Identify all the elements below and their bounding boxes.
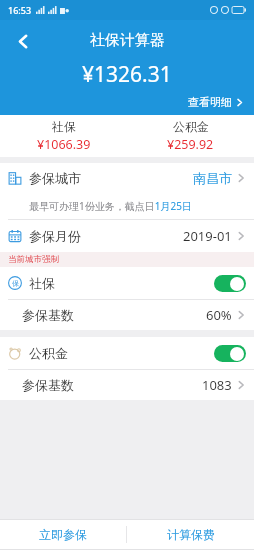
staticText: 16:53 — [8, 4, 32, 16]
staticText: 参保基数 — [22, 307, 74, 323]
staticText: 查看明细 — [188, 95, 232, 109]
staticText: 公积金 — [29, 345, 68, 361]
button[interactable]: Toggle — [214, 345, 246, 362]
button[interactable]: 保 — [0, 267, 254, 299]
staticText: 2019-01 — [183, 227, 232, 245]
button[interactable]: 查看明细 — [184, 93, 248, 111]
button[interactable]: 立即参保 — [0, 520, 126, 549]
staticText: ¥1066.39 — [37, 136, 91, 153]
staticText: 社保 — [52, 119, 76, 134]
staticText: 社保 — [29, 275, 55, 291]
staticText: 南昌市 — [193, 170, 232, 186]
staticText: 参保基数 — [22, 377, 74, 393]
button[interactable]: 参保基数 — [0, 370, 254, 400]
staticText: 社保计算器 — [90, 31, 165, 50]
staticText: ¥1326.31 — [82, 60, 172, 89]
button[interactable]: 计算保费 — [127, 520, 254, 549]
staticText: 60% — [206, 306, 232, 324]
staticText: 保 — [12, 279, 19, 288]
staticText: 当前城市强制 — [8, 254, 59, 265]
staticText: 参保月份 — [29, 228, 81, 244]
button[interactable]: Toggle — [214, 275, 246, 292]
button[interactable]: 公积金 — [0, 337, 254, 369]
staticText: 1083 — [202, 376, 232, 394]
staticText: 参保城市 — [29, 170, 81, 186]
button[interactable]: 参保城市 — [0, 163, 254, 193]
button[interactable]: 参保月份 — [0, 220, 254, 252]
staticText: 立即参保 — [39, 527, 87, 542]
staticText: 计算保费 — [167, 527, 215, 542]
staticText: ¥259.92 — [167, 136, 214, 153]
button[interactable]: 公积金 — [127, 119, 254, 153]
button[interactable]: 参保基数 — [0, 300, 254, 330]
button[interactable]: 社保 — [0, 119, 127, 153]
staticText: 最早可办理1份业务，截点日1月25日 — [29, 199, 192, 213]
button[interactable]: Back — [6, 24, 40, 58]
staticText: 公积金 — [173, 119, 209, 134]
